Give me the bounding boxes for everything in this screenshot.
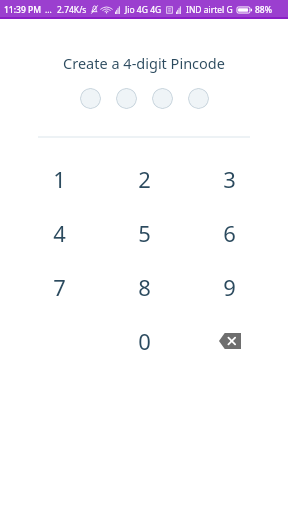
button[interactable]: 3 [187, 152, 272, 206]
staticText: IND airtel G [186, 4, 233, 16]
staticText: 2.74K/s [57, 4, 87, 16]
button[interactable]: 5 [102, 206, 187, 260]
button[interactable]: 9 [187, 260, 272, 314]
staticText: 5 [138, 218, 151, 248]
button[interactable]: Backspace [187, 314, 272, 368]
staticText: 3 [223, 164, 236, 194]
button[interactable]: 2 [102, 152, 187, 206]
staticText: ... [45, 4, 52, 16]
staticText: 6 [223, 218, 236, 248]
button[interactable]: 1 [16, 152, 102, 206]
staticText: Create a 4-digit Pincode [0, 53, 288, 73]
staticText: 0 [138, 326, 151, 356]
staticText: 88% [255, 4, 272, 16]
button[interactable]: 7 [16, 260, 102, 314]
staticText: 8 [138, 272, 151, 302]
staticText: 9 [223, 272, 236, 302]
button[interactable]: 0 [102, 314, 187, 368]
button[interactable]: 6 [187, 206, 272, 260]
staticText: 4 [53, 218, 66, 248]
staticText: 2 [138, 164, 151, 194]
button[interactable]: 8 [102, 260, 187, 314]
staticText: Jio 4G 4G [125, 4, 162, 16]
staticText: 1 [53, 164, 66, 194]
staticText: 7 [53, 272, 66, 302]
button[interactable]: 4 [16, 206, 102, 260]
staticText: 11:39 PM [4, 4, 41, 16]
